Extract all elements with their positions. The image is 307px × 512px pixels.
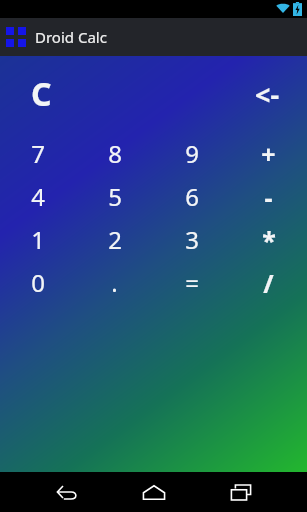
button[interactable]: . xyxy=(76,261,153,304)
staticText: 7 xyxy=(31,137,45,170)
button[interactable]: - xyxy=(230,175,307,218)
staticText: . xyxy=(111,266,118,299)
staticText: 1 xyxy=(31,223,45,256)
staticText: 6 xyxy=(185,180,199,213)
button[interactable]: 7 xyxy=(0,132,76,175)
staticText: 2 xyxy=(108,223,122,256)
staticText: - xyxy=(264,180,273,214)
button[interactable]: / xyxy=(230,261,307,304)
button[interactable]: 4 xyxy=(0,175,76,218)
button[interactable]: Recent apps xyxy=(216,472,266,512)
staticText: C xyxy=(31,72,52,116)
staticText: 8 xyxy=(108,137,122,170)
button[interactable]: 9 xyxy=(153,132,230,175)
button[interactable]: 6 xyxy=(153,175,230,218)
button[interactable]: <- xyxy=(237,66,297,122)
staticText: 0 xyxy=(31,266,45,299)
staticText: 4 xyxy=(31,180,45,213)
button[interactable]: 8 xyxy=(76,132,153,175)
button[interactable]: 3 xyxy=(153,218,230,261)
staticText: Droid Calc xyxy=(35,27,107,47)
button[interactable]: * xyxy=(230,218,307,261)
button[interactable]: C xyxy=(14,66,68,122)
staticText: / xyxy=(263,266,274,300)
button[interactable]: 5 xyxy=(76,175,153,218)
button[interactable]: = xyxy=(153,261,230,304)
staticText: 5 xyxy=(108,180,122,213)
staticText: = xyxy=(185,266,199,299)
button[interactable]: Back xyxy=(42,472,92,512)
staticText: <- xyxy=(255,76,280,113)
button[interactable]: 2 xyxy=(76,218,153,261)
staticText: + xyxy=(261,137,276,171)
button[interactable]: 0 xyxy=(0,261,76,304)
button[interactable]: Home xyxy=(129,472,179,512)
staticText: 9 xyxy=(185,137,199,170)
button[interactable]: 1 xyxy=(0,218,76,261)
staticText: * xyxy=(262,223,276,257)
button[interactable]: + xyxy=(230,132,307,175)
staticText: 3 xyxy=(185,223,199,256)
